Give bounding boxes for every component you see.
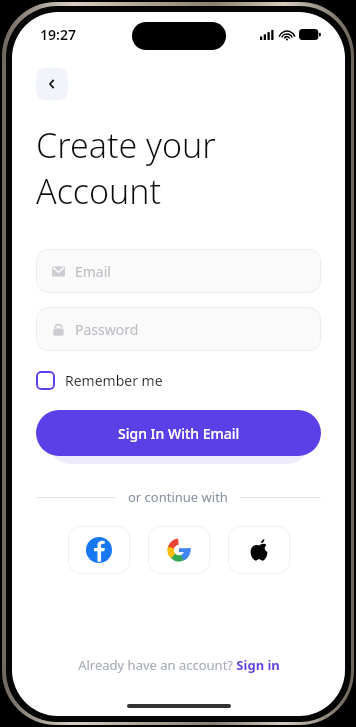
button[interactable]: Sign In With Email <box>36 410 321 456</box>
staticText: Password <box>75 320 139 339</box>
staticText: or continue with <box>128 488 228 506</box>
staticText: Remember me <box>65 371 163 390</box>
button[interactable]: Already have an account? Sign in <box>12 652 345 678</box>
button[interactable]: Back <box>36 68 68 100</box>
staticText: 19:27 <box>40 25 76 44</box>
staticText: Already have an account? Sign in <box>78 656 280 674</box>
staticText: Email <box>75 262 111 281</box>
button[interactable]: Sign in with Google <box>148 526 210 574</box>
button[interactable]: Email <box>36 249 321 293</box>
button[interactable]: Sign in with Facebook <box>68 526 130 574</box>
button[interactable]: Remember me <box>36 369 163 392</box>
staticText: Sign In With Email <box>118 424 240 443</box>
button[interactable]: Password <box>36 307 321 351</box>
button[interactable]: Sign in with Apple <box>228 526 290 574</box>
staticText: Create your Account <box>36 122 216 214</box>
